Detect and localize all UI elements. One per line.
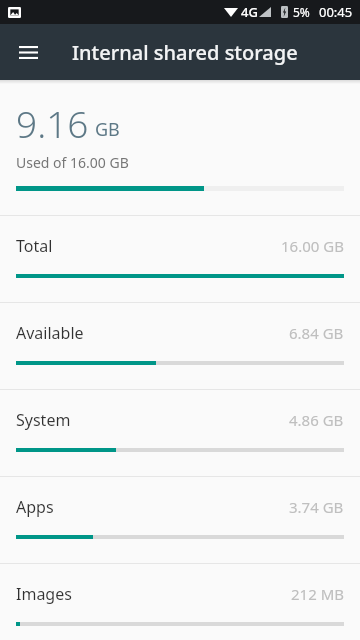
staticText: Used of 16.00 GB <box>16 153 129 172</box>
staticText: 4.86 GB <box>289 410 344 430</box>
staticText: 5% <box>293 4 310 20</box>
staticText: 00:45 <box>319 3 353 21</box>
button[interactable]: Available <box>0 302 360 389</box>
staticText: 212 MB <box>291 584 344 604</box>
staticText: 9.16 <box>16 98 89 148</box>
button[interactable]: Total <box>0 215 360 302</box>
staticText: System <box>16 409 71 431</box>
button[interactable]: Open navigation drawer <box>4 28 52 76</box>
staticText: Images <box>16 583 72 605</box>
staticText: 16.00 GB <box>281 236 344 256</box>
staticText: Internal shared storage <box>72 39 298 66</box>
staticText: 3.74 GB <box>289 497 344 517</box>
staticText: 4G <box>241 3 258 21</box>
button[interactable]: Apps <box>0 476 360 563</box>
staticText: GB <box>95 117 120 142</box>
staticText: Apps <box>16 496 54 518</box>
staticText: 6.84 GB <box>289 323 344 343</box>
button[interactable]: System <box>0 389 360 476</box>
staticText: Total <box>16 235 53 257</box>
staticText: Available <box>16 322 84 344</box>
button[interactable]: Images <box>0 563 360 640</box>
